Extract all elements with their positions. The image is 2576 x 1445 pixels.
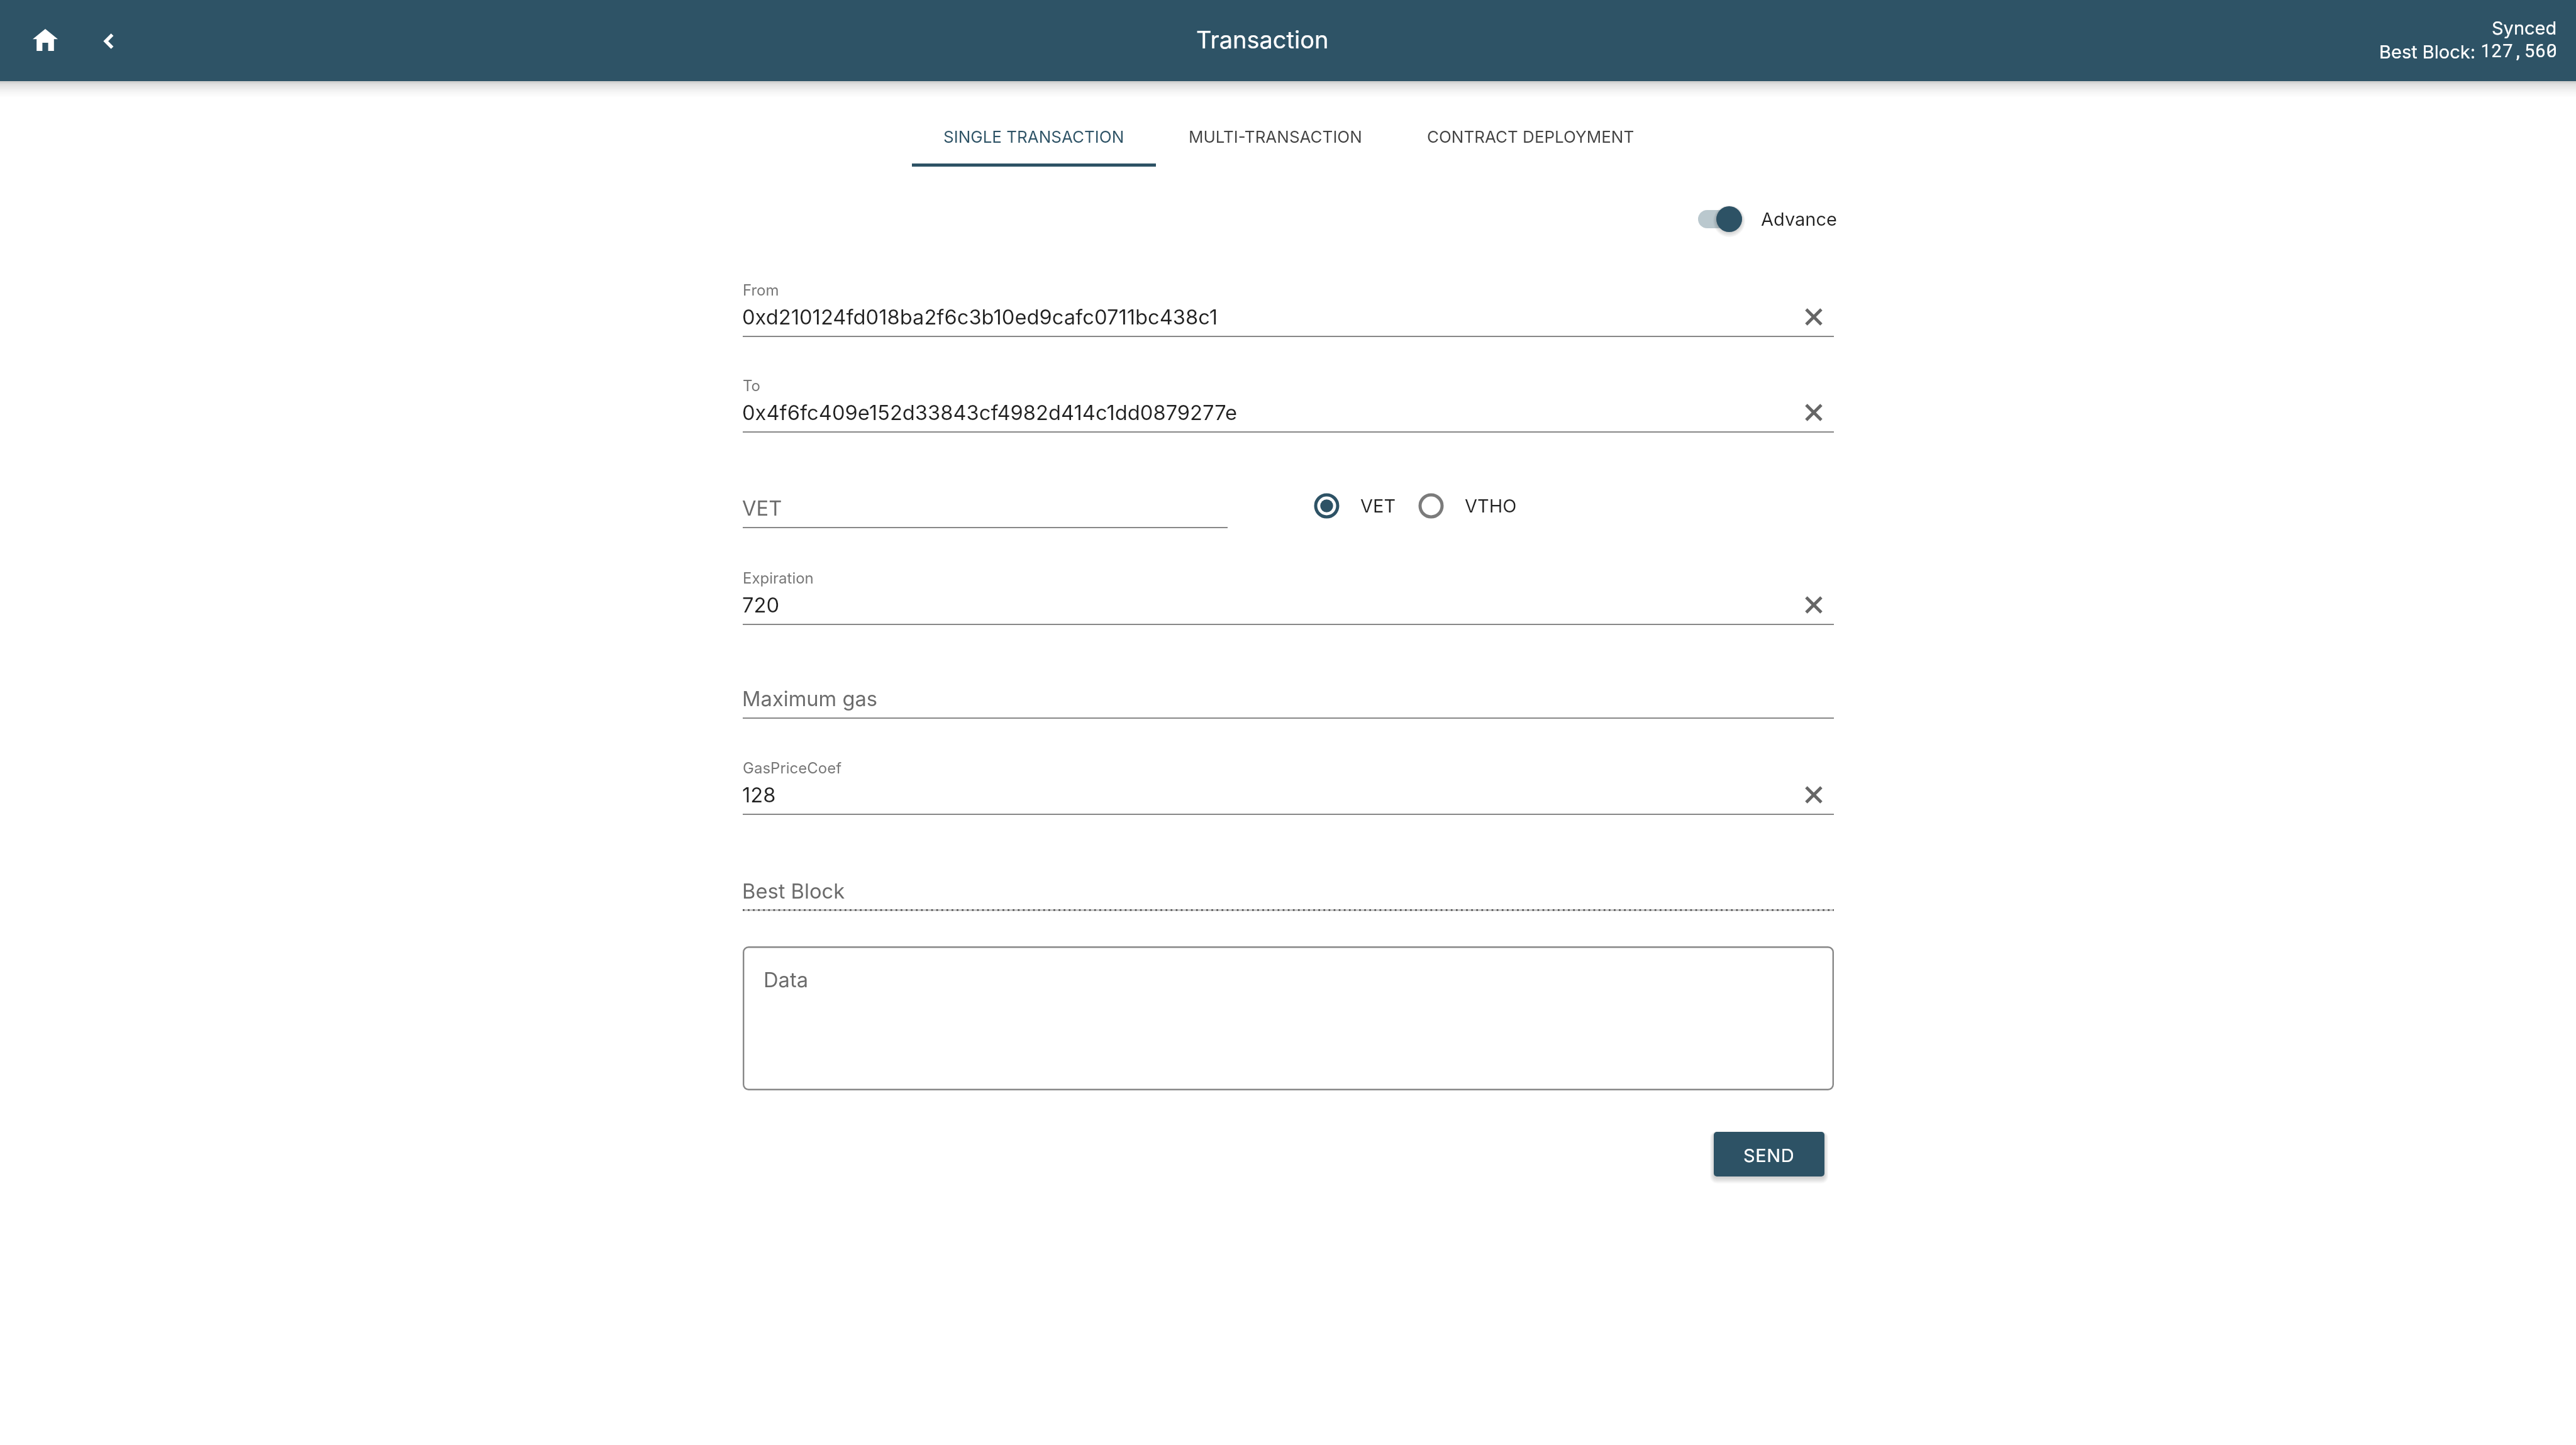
staticText: 720: [742, 592, 780, 617]
staticText: From: [743, 281, 779, 299]
staticText: Best Block:: [2379, 41, 2476, 63]
button[interactable]: MULTI-TRANSACTION: [1156, 81, 1394, 163]
button[interactable]: Expiration: [743, 561, 1834, 625]
staticText: VTHO: [1465, 495, 1517, 517]
button[interactable]: SEND: [1714, 1132, 1824, 1176]
staticText: SEND: [1743, 1144, 1795, 1166]
button[interactable]: Home: [18, 13, 72, 67]
button[interactable]: To: [743, 368, 1834, 433]
button[interactable]: SINGLE TRANSACTION: [912, 81, 1156, 167]
staticText: Synced: [2492, 17, 2557, 39]
staticText: Expiration: [743, 569, 814, 587]
button[interactable]: Back: [80, 14, 135, 69]
button[interactable]: Advance: [1692, 200, 1843, 239]
button[interactable]: Maximum gas: [743, 655, 1834, 719]
staticText: 128: [742, 782, 776, 807]
staticText: Advance: [1761, 208, 1837, 230]
button[interactable]: GasPriceCoef: [743, 751, 1834, 815]
staticText: Data: [763, 967, 809, 992]
button[interactable]: Clear: [1799, 590, 1828, 619]
staticText: MULTI-TRANSACTION: [1189, 127, 1362, 147]
staticText: 0x4f6fc409e152d33843cf4982d414c1dd087927…: [742, 400, 1238, 425]
button[interactable]: CONTRACT DEPLOYMENT: [1394, 81, 1667, 163]
staticText: Maximum gas: [742, 686, 878, 711]
staticText: 127,560: [2480, 38, 2557, 62]
button[interactable]: VET: [1314, 493, 1396, 519]
staticText: SINGLE TRANSACTION: [943, 127, 1124, 147]
staticText: Best Block: [742, 878, 845, 904]
button[interactable]: From: [743, 273, 1834, 337]
staticText: GasPriceCoef: [743, 759, 842, 777]
button[interactable]: Clear: [1799, 398, 1828, 427]
staticText: 0xd210124fd018ba2f6c3b10ed9cafc0711bc438…: [742, 304, 1218, 329]
staticText: VET: [742, 496, 782, 521]
staticText: CONTRACT DEPLOYMENT: [1427, 127, 1635, 147]
button[interactable]: Data: [743, 946, 1834, 1090]
button[interactable]: VTHO: [1418, 493, 1517, 519]
button[interactable]: Clear: [1799, 780, 1828, 809]
button[interactable]: VET: [743, 464, 1228, 528]
staticText: Transaction: [1196, 25, 1329, 54]
button[interactable]: Best Block: [743, 847, 1834, 911]
button[interactable]: Clear: [1799, 302, 1828, 331]
staticText: To: [743, 377, 761, 395]
staticText: VET: [1360, 495, 1396, 517]
